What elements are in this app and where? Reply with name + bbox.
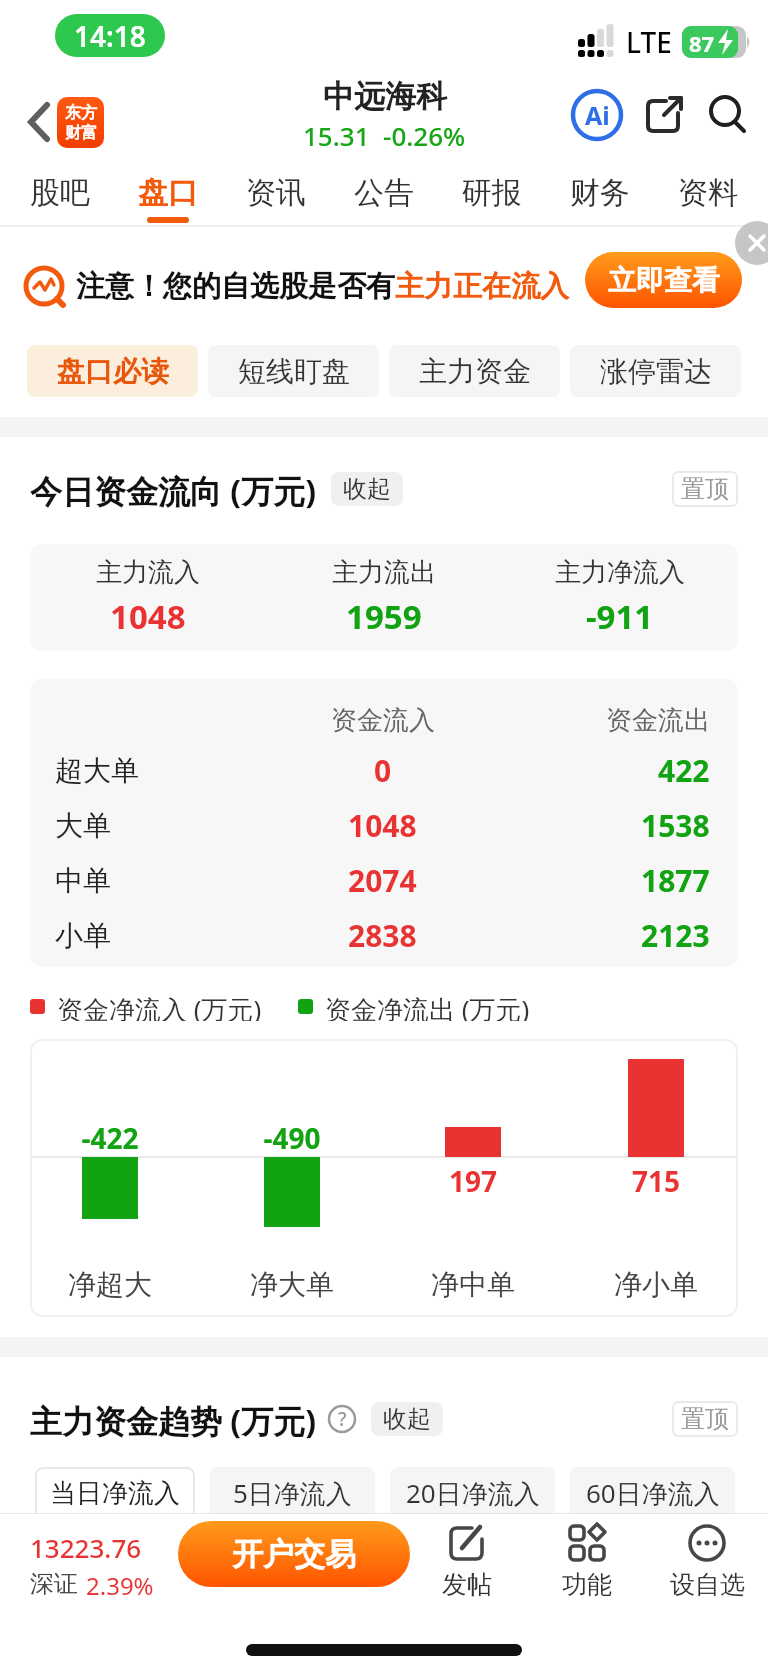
button[interactable]: 研报 (462, 164, 522, 223)
button[interactable]: 功能 (547, 1523, 627, 1600)
button[interactable]: 盘口 (138, 164, 198, 223)
staticText: 15.31 -0.26% (303, 118, 466, 153)
staticText: 主力净流入 (555, 556, 685, 589)
staticText: 收起 (343, 474, 391, 504)
button[interactable]: 资讯 (246, 164, 306, 223)
staticText: 主力流出 (332, 556, 436, 589)
staticText: 开户交易 (232, 1535, 356, 1574)
button[interactable]: 开户交易 (178, 1521, 410, 1587)
button[interactable]: Ai (570, 88, 624, 142)
staticText: 盘口 (138, 174, 198, 212)
staticText: LTE (626, 23, 672, 61)
staticText: 资料 (678, 174, 738, 212)
staticText: -422 (50, 1119, 170, 1157)
staticText: 715 (596, 1162, 716, 1200)
button[interactable]: 公告 (354, 164, 414, 223)
staticText: 1877 (641, 860, 710, 901)
staticText: 涨停雷达 (600, 354, 712, 389)
button[interactable]: 盘口必读 (27, 345, 198, 397)
staticText: 净大单 (232, 1267, 352, 1302)
button[interactable]: 东方 (57, 97, 104, 148)
button[interactable] (735, 221, 768, 265)
staticText: 公告 (354, 174, 414, 212)
staticText: 2074 (348, 860, 417, 901)
staticText: 股吧 (30, 174, 90, 212)
staticText: 注意！您的自选股是否有主力正在流入 (76, 268, 569, 305)
staticText: 东方 (65, 103, 97, 123)
staticText: 13223.76 (30, 1530, 142, 1565)
staticText: 1048 (110, 594, 186, 639)
button[interactable]: 13223.76 (30, 1530, 154, 1602)
staticText: 1048 (348, 805, 417, 846)
button[interactable] (706, 93, 750, 137)
staticText: ? (338, 1406, 347, 1432)
staticText: 2838 (348, 915, 417, 956)
staticText: 研报 (462, 174, 522, 212)
staticText: 14:18 (74, 17, 146, 55)
staticText: 今日资金流向 (万元) (30, 469, 317, 509)
staticText: 设自选 (670, 1569, 745, 1600)
staticText: 立即查看 (608, 263, 720, 298)
button[interactable]: 立即查看 (585, 252, 742, 308)
staticText: 超大单 (55, 753, 139, 788)
staticText: 主力资金趋势 (万元) (30, 1399, 317, 1439)
button[interactable]: 财务 (570, 164, 630, 223)
button[interactable]: 短线盯盘 (208, 345, 379, 397)
button[interactable]: 60日净流入 (570, 1467, 735, 1519)
staticText: 中单 (55, 863, 111, 898)
staticText: 资金净流入 (万元) (57, 991, 262, 1021)
staticText: 深证 (30, 1569, 78, 1599)
staticText: 当日净流入 (50, 1477, 180, 1510)
staticText: 87 (689, 28, 715, 58)
staticText: 资金流入 (331, 704, 435, 737)
staticText: 资金净流出 (万元) (325, 991, 530, 1021)
button[interactable]: 当日净流入 (35, 1467, 195, 1519)
staticText: 短线盯盘 (238, 354, 350, 389)
staticText: 净中单 (413, 1267, 533, 1302)
staticText: 197 (413, 1162, 533, 1200)
staticText: 资讯 (246, 174, 306, 212)
staticText: -911 (586, 594, 654, 639)
staticText: 小单 (55, 918, 111, 953)
staticText: 5日净流入 (233, 1475, 352, 1511)
staticText: Ai (585, 98, 610, 132)
button[interactable]: 股吧 (30, 164, 90, 223)
button[interactable]: 涨停雷达 (570, 345, 741, 397)
button[interactable]: 主力资金 (389, 345, 560, 397)
staticText: 财务 (570, 174, 630, 212)
staticText: 置顶 (681, 1404, 729, 1434)
staticText: 主力资金 (419, 354, 531, 389)
button[interactable]: 置顶 (672, 471, 738, 507)
staticText: 收起 (383, 1404, 431, 1434)
button[interactable] (642, 93, 686, 137)
staticText: 2.39% (86, 1569, 154, 1602)
staticText: 1959 (346, 594, 422, 639)
staticText: 大单 (55, 808, 111, 843)
staticText: 盘口必读 (57, 354, 169, 389)
staticText: 净超大 (50, 1267, 170, 1302)
staticText: 置顶 (681, 474, 729, 504)
staticText: 主力流入 (96, 556, 200, 589)
staticText: 60日净流入 (586, 1475, 720, 1511)
staticText: 0 (374, 750, 392, 791)
staticText: 财富 (65, 123, 97, 143)
button[interactable]: 收起 (331, 472, 403, 506)
staticText: -490 (232, 1119, 352, 1157)
staticText: 2123 (641, 915, 710, 956)
button[interactable]: 资料 (678, 164, 738, 223)
button[interactable]: 设自选 (667, 1523, 747, 1600)
button[interactable]: 发帖 (427, 1523, 507, 1600)
staticText: 422 (658, 750, 710, 791)
staticText: 20日净流入 (406, 1475, 540, 1511)
button[interactable]: 收起 (371, 1402, 443, 1436)
staticText: 功能 (562, 1569, 612, 1600)
staticText: 1538 (641, 805, 710, 846)
button[interactable]: 置顶 (672, 1401, 738, 1437)
staticText: 发帖 (442, 1569, 492, 1600)
button[interactable]: 20日净流入 (390, 1467, 555, 1519)
button[interactable] (28, 103, 50, 141)
button[interactable]: 5日净流入 (210, 1467, 375, 1519)
staticText: 净小单 (596, 1267, 716, 1302)
staticText: 资金流出 (606, 704, 710, 737)
staticText: 中远海科 (323, 77, 447, 116)
